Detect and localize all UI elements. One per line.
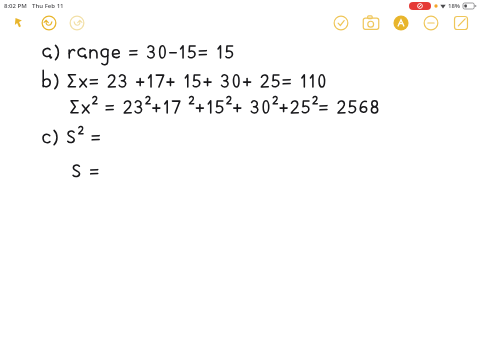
- button[interactable]: Done: [332, 14, 350, 32]
- staticText: Thu Feb 11: [32, 2, 64, 10]
- button[interactable]: Screen recording: [409, 2, 431, 10]
- staticText: 8:02 PM: [4, 2, 27, 10]
- button[interactable]: Undo: [40, 14, 58, 32]
- button[interactable]: Redo: [68, 14, 86, 32]
- button[interactable]: Eraser: [422, 14, 440, 32]
- staticText: 18%: [448, 2, 461, 10]
- button[interactable]: Camera: [362, 14, 380, 32]
- button[interactable]: Select: [12, 15, 28, 31]
- button[interactable]: Text style: [392, 14, 410, 32]
- button[interactable]: New note: [452, 14, 470, 32]
- button[interactable]: [0, 35, 480, 360]
